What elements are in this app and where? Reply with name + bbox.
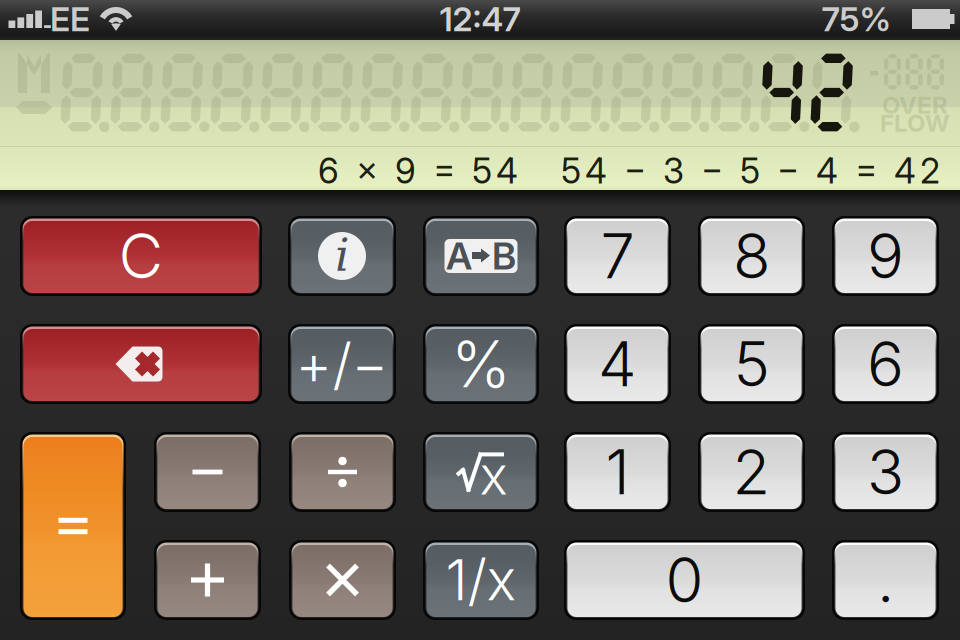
button[interactable]: C [20,216,262,296]
staticText: 7 [600,219,634,293]
staticText: 1/x [445,546,516,614]
staticText: x [479,443,507,507]
staticText: 6 [867,327,904,401]
staticText: EE [50,0,90,39]
button[interactable]: 3 [832,432,939,512]
button[interactable]: 9 [832,216,939,296]
button[interactable]: 5 [698,324,805,404]
button[interactable]: Divide [289,432,396,512]
button[interactable]: Multiply [289,540,396,620]
staticText: B [492,233,516,279]
staticText: +/− [295,330,388,398]
staticText: A [446,233,472,279]
button[interactable]: . [832,540,939,620]
staticText: OVER [882,90,948,119]
staticText: i [335,229,349,281]
button[interactable]: +/− [288,324,396,404]
staticText: 75% [821,0,890,39]
staticText: 8 [733,219,770,293]
staticText: C [118,219,163,293]
button[interactable]: 0 [564,540,805,620]
staticText: 1 [605,435,629,509]
staticText: 3 [867,435,904,509]
button[interactable]: 1/x [423,540,539,620]
staticText: . [877,543,894,617]
button[interactable]: Backspace [20,324,262,404]
button[interactable]: % [423,324,539,404]
staticText: 4 [598,327,637,401]
button[interactable]: Minus [154,432,261,512]
button[interactable]: 1 [564,432,671,512]
button[interactable]: Swap A and B [423,216,539,296]
button[interactable]: 8 [698,216,805,296]
staticText: 2 [732,435,770,509]
button[interactable]: Equals [20,432,126,620]
button[interactable]: Info [288,216,396,296]
staticText: % [451,325,511,403]
button[interactable]: 2 [698,432,805,512]
staticText: 0 [665,543,703,617]
button[interactable]: Plus [154,540,261,620]
staticText: FLOW [880,108,950,137]
button[interactable]: 4 [564,324,671,404]
staticText: 9 [867,219,904,293]
staticText: 5 [733,327,769,401]
staticText: 6 × 9 = 54 54 − 3 − 5 − 4 = 42 [318,150,940,192]
button[interactable]: 6 [832,324,939,404]
button[interactable]: Square root [423,432,539,512]
button[interactable]: 7 [564,216,671,296]
staticText: 12:47 [439,0,520,39]
